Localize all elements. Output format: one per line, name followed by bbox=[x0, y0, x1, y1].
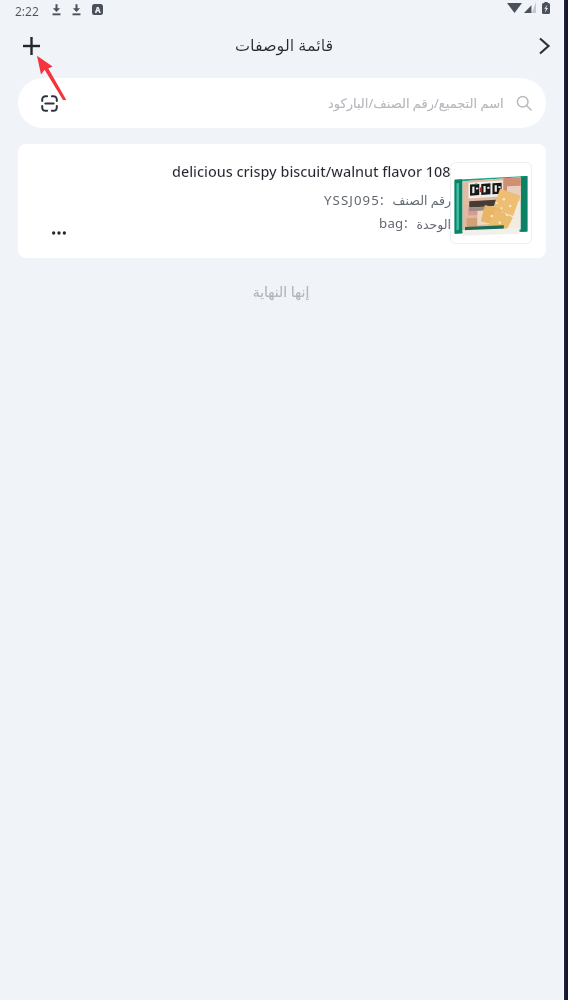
staticText: : bbox=[380, 190, 384, 209]
button[interactable]: Add recipe bbox=[13, 28, 49, 64]
button[interactable]: More options bbox=[18, 144, 546, 258]
staticText: رقم الصنف bbox=[392, 192, 451, 209]
button[interactable]: Scan barcode bbox=[18, 78, 546, 128]
staticText: 2:22 bbox=[15, 3, 39, 19]
button[interactable]: More options bbox=[42, 216, 76, 250]
staticText: الوحدة bbox=[416, 217, 451, 232]
button[interactable]: Scan barcode bbox=[31, 85, 67, 121]
staticText: YSSJ095 bbox=[324, 191, 380, 209]
staticText: : bbox=[404, 213, 408, 232]
staticText: delicious crispy biscuit/walnut flavor 1… bbox=[172, 162, 451, 182]
staticText: اسم التجميع/رقم الصنف/الباركود bbox=[328, 94, 504, 112]
staticText: قائمة الوصفات bbox=[235, 34, 334, 56]
staticText: bag bbox=[379, 214, 404, 232]
staticText: A bbox=[95, 4, 101, 15]
button[interactable]: Open bbox=[526, 28, 562, 64]
staticText: إنها النهاية bbox=[0, 282, 562, 301]
